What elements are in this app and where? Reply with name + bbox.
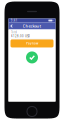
button[interactable]: Back <box>8 23 14 29</box>
staticText: Total <box>11 30 17 34</box>
staticText: $128.00 USD <box>11 34 30 38</box>
button[interactable]: Pay now <box>10 39 53 47</box>
staticText: Checkout <box>22 23 41 29</box>
staticText: Pay now <box>26 42 38 45</box>
button[interactable]: Home <box>27 106 37 116</box>
staticText: 9:41 <box>11 19 18 22</box>
